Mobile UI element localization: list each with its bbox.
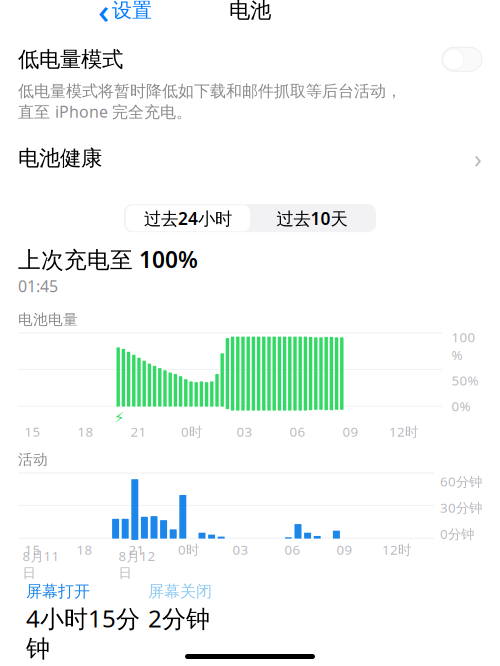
- staticText: 0时: [178, 541, 199, 558]
- staticText: ›: [474, 141, 482, 175]
- staticText: 设置: [112, 0, 152, 23]
- staticText: 06: [289, 423, 305, 440]
- button[interactable]: 过去10天: [250, 205, 374, 231]
- staticText: 09: [336, 541, 352, 558]
- staticText: 过去10天: [276, 207, 347, 230]
- staticText: 屏幕关闭: [148, 582, 212, 601]
- staticText: 60分钟: [440, 473, 482, 490]
- button[interactable]: 屏幕关闭: [148, 582, 212, 601]
- staticText: 15: [24, 541, 40, 558]
- staticText: 0分钟: [440, 525, 474, 543]
- staticText: 09: [342, 423, 358, 440]
- staticText: 4小时15分钟: [26, 602, 140, 664]
- staticText: 12时: [382, 541, 411, 558]
- staticText: 01:45: [18, 275, 58, 296]
- staticText: 100%: [451, 328, 475, 364]
- staticText: 30分钟: [440, 499, 482, 516]
- button[interactable]: 电池健康: [18, 122, 482, 180]
- staticText: 03: [236, 423, 252, 440]
- staticText: 活动: [18, 451, 48, 469]
- staticText: ‹: [98, 0, 109, 33]
- button[interactable]: ‹: [98, 0, 152, 37]
- staticText: 电池健康: [18, 145, 102, 171]
- staticText: 电池: [229, 0, 271, 23]
- staticText: 0%: [451, 397, 470, 415]
- button[interactable]: 过去24小时: [126, 205, 250, 231]
- staticText: 15: [24, 423, 40, 440]
- staticText: 50%: [451, 372, 478, 389]
- staticText: 上次充电至 100%: [18, 244, 198, 274]
- staticText: 屏幕打开: [26, 582, 90, 601]
- staticText: 21: [128, 541, 144, 558]
- staticText: 2分钟: [148, 602, 210, 634]
- staticText: ⚡︎: [114, 409, 124, 426]
- staticText: 18: [77, 423, 93, 440]
- staticText: 03: [232, 541, 248, 558]
- staticText: 过去24小时: [144, 207, 232, 230]
- button[interactable]: 屏幕打开: [26, 582, 90, 601]
- staticText: 低电量模式: [18, 46, 123, 72]
- staticText: 12时: [389, 423, 418, 440]
- staticText: 低电量模式将暂时降低如下载和邮件抓取等后台活动， 直至 iPhone 完全充电。: [18, 81, 402, 122]
- staticText: 电池电量: [18, 311, 78, 329]
- staticText: 8月12日: [118, 547, 155, 581]
- staticText: 8月11日: [22, 547, 59, 581]
- staticText: 0时: [181, 423, 202, 440]
- button[interactable]: 低电量模式开关: [442, 47, 482, 71]
- staticText: 21: [130, 423, 146, 440]
- staticText: 18: [76, 541, 92, 558]
- staticText: 06: [284, 541, 300, 558]
